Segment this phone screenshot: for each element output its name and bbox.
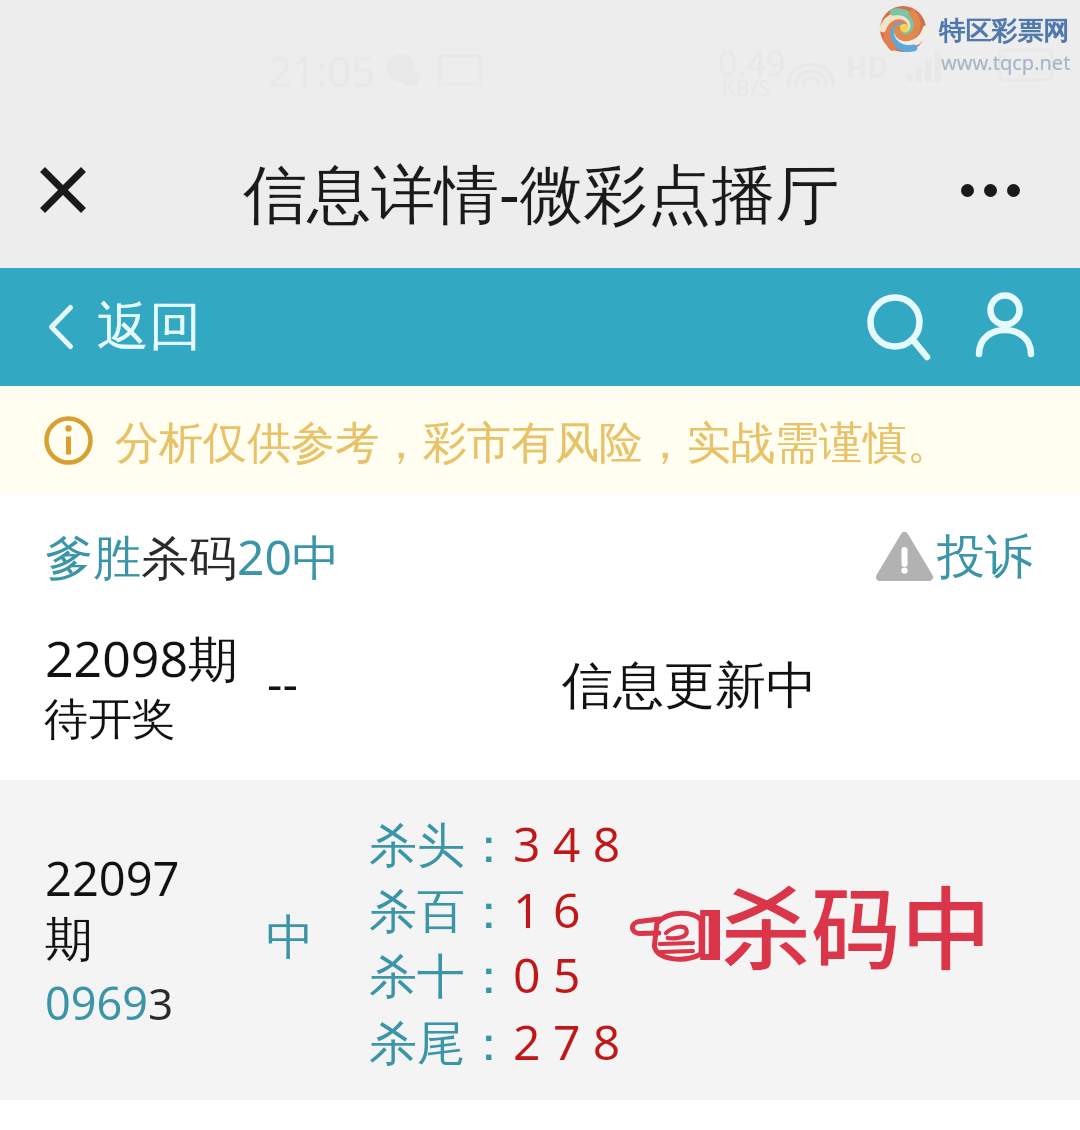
- staticText: 分析仅供参考，彩市有风险，实战需谨慎。: [115, 416, 951, 471]
- staticText: 22097: [45, 846, 180, 910]
- staticText: 09693: [45, 972, 174, 1033]
- staticText: 期: [45, 910, 93, 970]
- staticText: 返回: [97, 294, 201, 360]
- staticText: 待开奖: [44, 692, 176, 747]
- staticText: 投诉: [937, 527, 1033, 585]
- button[interactable]: 22097: [0, 780, 1080, 1100]
- staticText: 杀尾：2 7 8: [369, 1009, 621, 1075]
- staticText: 特区彩票网: [939, 15, 1069, 48]
- staticText: 22098期: [45, 624, 238, 692]
- staticText: www.tqcp.net: [941, 49, 1071, 76]
- button[interactable]: 22098期: [0, 603, 1080, 780]
- button[interactable]: 投诉: [869, 527, 1041, 585]
- button[interactable]: Close: [8, 135, 118, 245]
- staticText: 信息详情-微彩点播厅: [243, 149, 840, 236]
- button[interactable]: More options: [935, 135, 1045, 245]
- button[interactable]: Search: [835, 268, 955, 386]
- staticText: 信息更新中: [562, 654, 817, 718]
- staticText: 爹胜杀码20中: [45, 524, 340, 590]
- staticText: 杀百：1 6: [369, 877, 581, 943]
- staticText: 杀十：0 5: [369, 942, 581, 1008]
- button[interactable]: Account: [948, 268, 1064, 386]
- button[interactable]: 爹胜杀码20中: [30, 518, 355, 596]
- button[interactable]: 返回: [24, 268, 215, 386]
- staticText: --: [267, 650, 298, 715]
- staticText: 杀码中: [721, 858, 991, 988]
- staticText: 杀头：3 4 8: [369, 811, 621, 877]
- staticText: 中: [266, 908, 314, 968]
